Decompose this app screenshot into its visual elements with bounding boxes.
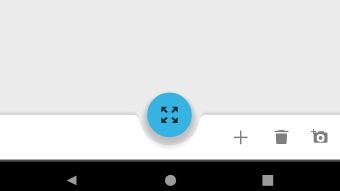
button[interactable]: Expand to fullscreen — [147, 93, 192, 138]
button[interactable]: Recent apps — [251, 163, 285, 191]
button[interactable]: Delete — [264, 120, 298, 154]
button[interactable]: Home — [154, 163, 188, 191]
button[interactable]: Back — [55, 163, 89, 191]
button[interactable]: Add a photo — [304, 120, 338, 154]
button[interactable]: Add — [224, 120, 258, 154]
